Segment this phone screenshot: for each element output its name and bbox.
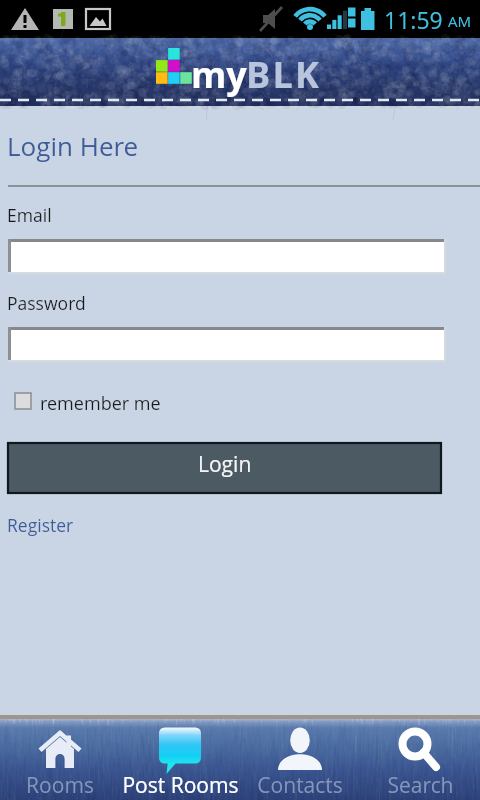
button[interactable]: Post Rooms [120,719,240,800]
button[interactable]: Search [360,719,480,800]
staticText: Password [7,291,86,315]
button[interactable]: Login [8,443,441,493]
button[interactable] [8,239,446,274]
button[interactable]: Register [7,513,74,537]
staticText: Post Rooms [122,771,239,798]
button[interactable] [8,327,446,362]
staticText: Login [198,450,252,479]
staticText: Contacts [257,771,343,798]
staticText: AM [448,11,472,31]
staticText: my [191,50,247,99]
button[interactable]: Contacts [240,719,360,800]
staticText: 11:59 [384,4,443,35]
staticText: remember me [40,391,161,416]
button[interactable]: Rooms [0,719,120,800]
staticText: Email [7,203,52,227]
staticText: Search [387,771,454,798]
staticText: BLK [246,50,322,99]
staticText: Login Here [7,128,139,163]
staticText: Rooms [26,771,94,798]
button[interactable]: remember me [13,390,161,416]
